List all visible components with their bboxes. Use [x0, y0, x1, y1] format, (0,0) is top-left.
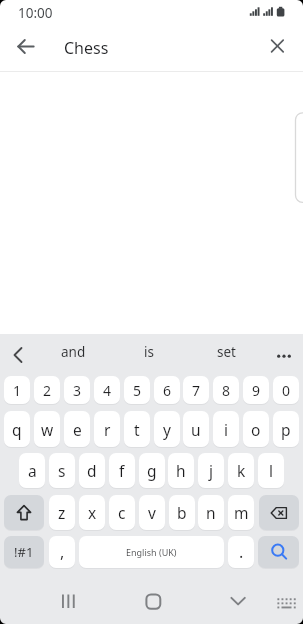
button[interactable]: c [109, 495, 135, 530]
staticText: and [61, 343, 86, 361]
staticText: f [119, 460, 125, 481]
button[interactable]: q [4, 411, 30, 447]
button[interactable]: 5 [124, 376, 150, 404]
button[interactable] [261, 30, 293, 62]
button[interactable]: x [79, 495, 105, 530]
staticText: 10:00 [18, 4, 53, 22]
staticText: j [209, 460, 213, 481]
button[interactable]: 3 [64, 376, 90, 404]
button[interactable]: is [119, 337, 179, 367]
staticText: h [176, 460, 186, 481]
button[interactable] [223, 586, 253, 616]
button[interactable]: k [228, 453, 254, 488]
staticText: g [147, 460, 157, 481]
staticText: 4 [103, 381, 112, 400]
staticText: o [251, 419, 261, 440]
staticText: Chess [64, 37, 109, 59]
button[interactable]: p [273, 411, 299, 447]
button[interactable] [259, 495, 299, 530]
staticText: l [269, 460, 273, 481]
button[interactable]: g [139, 453, 165, 488]
button[interactable]: 4 [94, 376, 120, 404]
staticText: w [41, 419, 54, 440]
staticText: q [12, 419, 22, 440]
button[interactable] [4, 495, 44, 530]
staticText: z [58, 502, 66, 523]
staticText: 8 [222, 381, 231, 400]
staticText: r [104, 419, 111, 440]
button[interactable]: l [258, 453, 284, 488]
button[interactable]: 2 [34, 376, 60, 404]
button[interactable]: b [169, 495, 195, 530]
staticText: i [224, 419, 228, 440]
button[interactable]: n [198, 495, 224, 530]
staticText: b [177, 502, 187, 523]
staticText: 5 [133, 381, 142, 400]
button[interactable]: f [109, 453, 135, 488]
button[interactable]: h [168, 453, 194, 488]
button[interactable]: 0 [273, 376, 299, 404]
button[interactable] [270, 335, 298, 369]
button[interactable]: and [43, 337, 103, 367]
staticText: , [60, 541, 65, 563]
staticText: p [281, 419, 291, 440]
staticText: c [118, 502, 126, 523]
staticText: a [28, 460, 37, 481]
staticText: e [73, 419, 82, 440]
staticText: u [191, 419, 201, 440]
button[interactable]: set [196, 337, 256, 367]
button[interactable]: j [198, 453, 224, 488]
button[interactable]: 6 [154, 376, 180, 404]
button[interactable] [272, 592, 300, 612]
button[interactable] [258, 536, 299, 568]
staticText: 6 [163, 381, 172, 400]
button[interactable]: m [228, 495, 254, 530]
button[interactable]: !#1 [4, 536, 44, 568]
staticText: 3 [73, 381, 82, 400]
button[interactable]: t [124, 411, 150, 447]
button[interactable]: English (UK) [79, 536, 224, 568]
button[interactable]: , [49, 536, 75, 568]
staticText: t [134, 419, 140, 440]
button[interactable]: a [19, 453, 45, 488]
staticText: x [88, 502, 97, 523]
button[interactable]: 1 [4, 376, 30, 404]
staticText: . [239, 541, 244, 563]
button[interactable]: e [64, 411, 90, 447]
button[interactable]: z [49, 495, 75, 530]
button[interactable]: u [183, 411, 209, 447]
button[interactable]: 7 [183, 376, 209, 404]
staticText: 7 [192, 381, 201, 400]
button[interactable]: v [139, 495, 165, 530]
staticText: set [217, 343, 236, 361]
button[interactable]: i [213, 411, 239, 447]
button[interactable] [53, 586, 83, 616]
staticText: 9 [252, 381, 261, 400]
staticText: s [58, 460, 66, 481]
button[interactable] [138, 586, 168, 616]
staticText: v [148, 502, 156, 523]
button[interactable]: 9 [243, 376, 269, 404]
button[interactable] [10, 31, 42, 63]
button[interactable]: d [79, 453, 105, 488]
staticText: k [237, 460, 246, 481]
staticText: 1 [13, 381, 22, 400]
staticText: is [144, 343, 154, 361]
staticText: !#1 [14, 543, 34, 561]
button[interactable]: . [228, 536, 254, 568]
staticText: d [87, 460, 97, 481]
staticText: 0 [282, 381, 291, 400]
button[interactable]: w [34, 411, 60, 447]
staticText: 2 [43, 381, 52, 400]
staticText: m [234, 502, 249, 523]
button[interactable] [4, 338, 32, 372]
button[interactable]: y [154, 411, 180, 447]
staticText: English (UK) [126, 546, 177, 558]
button[interactable]: 8 [213, 376, 239, 404]
staticText: y [163, 419, 171, 440]
button[interactable]: r [94, 411, 120, 447]
button[interactable]: s [49, 453, 75, 488]
button[interactable]: o [243, 411, 269, 447]
staticText: n [206, 502, 216, 523]
